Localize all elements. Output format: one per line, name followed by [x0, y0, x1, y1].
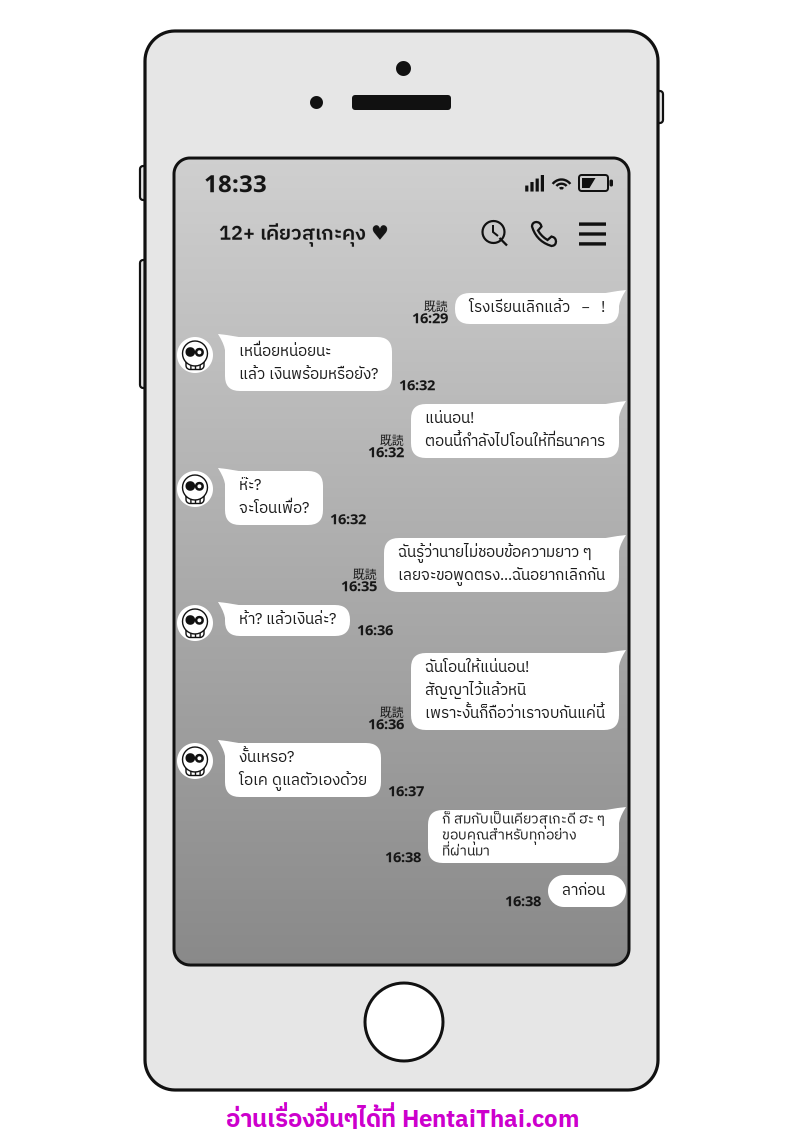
staticText: เลยจะขอพูดตรง...ฉันอยากเลิกกัน	[398, 563, 605, 588]
staticText: 既読	[424, 297, 448, 314]
staticText: 16:36	[357, 620, 393, 639]
staticText: แล้ว เงินพร้อมหรือยัง?	[239, 362, 378, 387]
staticText: 16:37	[388, 781, 424, 800]
button[interactable]: Search	[482, 220, 509, 247]
staticText: จะโอนเพื่อ?	[239, 496, 309, 521]
staticText: 16:36	[368, 714, 404, 733]
staticText: 16:32	[399, 375, 435, 394]
staticText: อ่านเรื่องอื่นๆได้ที่ HentaiThai.com	[226, 1100, 579, 1129]
button[interactable]: Call	[530, 219, 558, 248]
staticText: งั้นเหรอ?	[239, 745, 294, 770]
staticText: เพราะงั้นก็ถือว่าเราจบกันแค่นี้	[425, 701, 605, 726]
staticText: แน่นอน!	[425, 406, 474, 431]
staticText: ตอนนี้กำลังไปโอนให้ที่ธนาคาร	[425, 429, 605, 454]
staticText: เหนื่อยหน่อยนะ	[239, 339, 331, 364]
staticText: ห๊ะ?	[239, 473, 261, 498]
staticText: 16:38	[385, 847, 421, 866]
staticText: สัญญาไว้แล้วหนิ	[425, 678, 526, 703]
staticText: ห้า? แล้วเงินล่ะ?	[239, 607, 336, 632]
staticText: ลาก่อน	[562, 878, 605, 903]
staticText: โรงเรียนเลิกแล้ว － !	[469, 295, 605, 320]
staticText: 既読	[353, 565, 377, 582]
staticText: 16:35	[341, 576, 377, 595]
staticText: ฉันโอนให้แน่นอน!	[425, 655, 529, 680]
staticText: 既読	[380, 431, 404, 448]
button[interactable]: Menu	[579, 220, 606, 247]
staticText: 16:32	[330, 509, 366, 528]
staticText: 16:32	[368, 442, 404, 461]
staticText: ก็ สมกับเป็นเคียวสุเกะดี ฮะ ๆ	[442, 808, 605, 831]
staticText: 12+ เคียวสุเกะคุง ♥	[219, 217, 389, 250]
staticText: ขอบคุณสำหรับทุกอย่าง	[442, 824, 577, 847]
staticText: ฉันรู้ว่านายไม่ชอบข้อความยาว ๆ	[398, 540, 592, 565]
staticText: 18:33	[204, 167, 267, 199]
staticText: ที่ผ่านมา	[442, 840, 490, 863]
staticText: 16:29	[412, 308, 448, 327]
staticText: โอเค ดูแลตัวเองด้วย	[239, 768, 367, 793]
staticText: 16:38	[505, 891, 541, 910]
staticText: 既読	[380, 703, 404, 720]
